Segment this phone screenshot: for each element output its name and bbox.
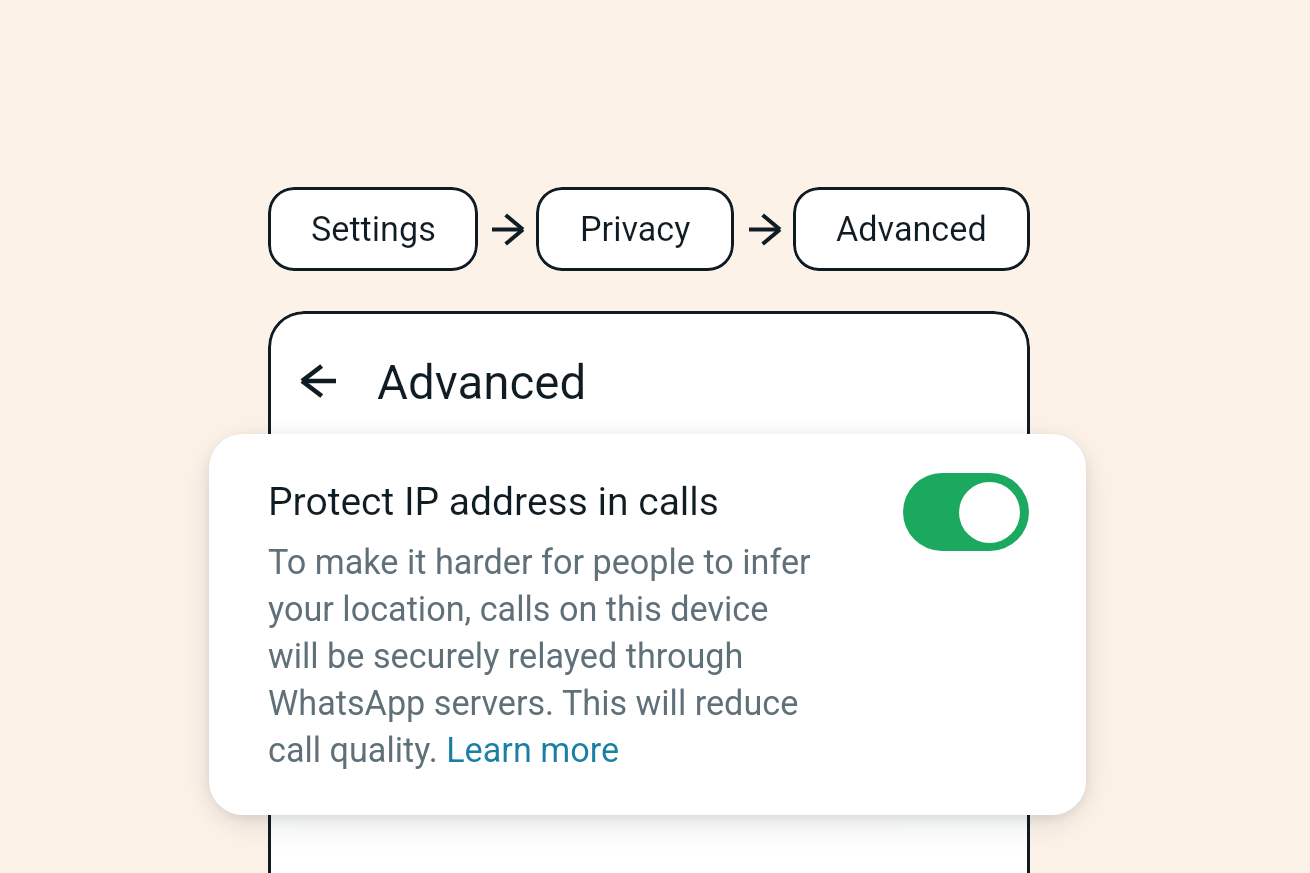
staticText: Settings — [311, 209, 436, 249]
staticText: To make it harder for people to infer yo… — [268, 542, 824, 771]
button[interactable]: Protect IP address in calls, on — [903, 473, 1029, 551]
staticText: Privacy — [580, 209, 691, 249]
staticText: Protect IP address in calls — [268, 479, 719, 525]
button[interactable]: Advanced — [793, 187, 1030, 271]
button[interactable]: Back — [285, 347, 353, 415]
staticText: Advanced — [377, 355, 587, 411]
button[interactable]: Settings — [268, 187, 478, 271]
button[interactable]: Learn more — [446, 732, 620, 768]
staticText: Advanced — [836, 209, 987, 249]
button[interactable]: Privacy — [536, 187, 734, 271]
